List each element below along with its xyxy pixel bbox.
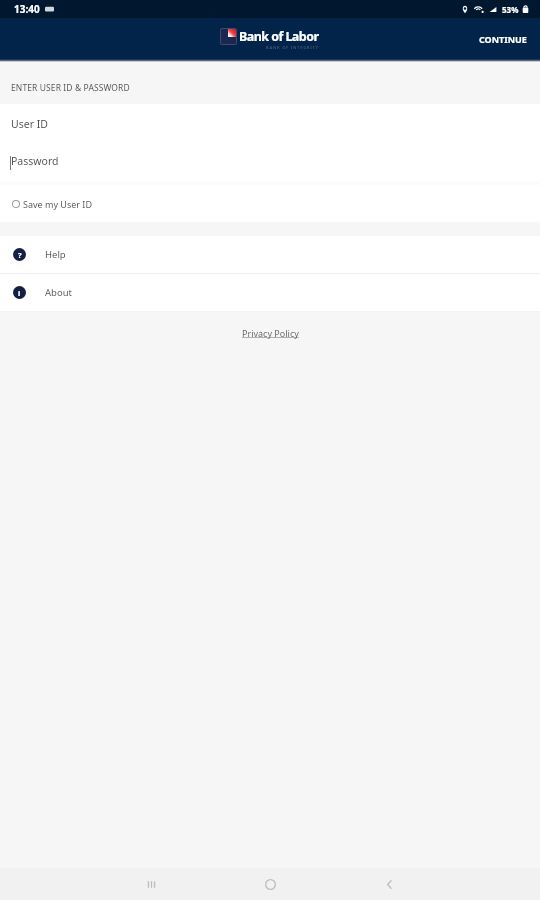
staticText: Help: [45, 248, 66, 261]
button[interactable]: Back: [373, 868, 405, 900]
staticText: About: [45, 286, 72, 299]
staticText: 53%: [502, 4, 519, 15]
staticText: Password: [11, 154, 59, 168]
button[interactable]: Save my User ID: [0, 185, 540, 222]
button[interactable]: Privacy Policy: [242, 327, 299, 339]
staticText: ENTER USER ID & PASSWORD: [11, 82, 130, 94]
staticText: User ID: [11, 117, 48, 131]
staticText: BANK OF INTEGRITY: [266, 45, 319, 50]
staticText: ?: [18, 250, 22, 260]
staticText: i: [18, 288, 21, 298]
button[interactable]: i: [0, 274, 540, 311]
button[interactable]: Recent apps: [135, 868, 167, 900]
button[interactable]: User ID: [0, 104, 540, 145]
staticText: 13:40: [14, 2, 40, 16]
button[interactable]: Home: [254, 868, 286, 900]
staticText: Bank of Labor: [239, 28, 319, 45]
button[interactable]: Password: [0, 145, 540, 181]
staticText: Save my User ID: [23, 198, 92, 210]
button[interactable]: CONTINUE: [466, 23, 540, 55]
staticText: CONTINUE: [479, 33, 527, 45]
button[interactable]: ?: [0, 236, 540, 273]
